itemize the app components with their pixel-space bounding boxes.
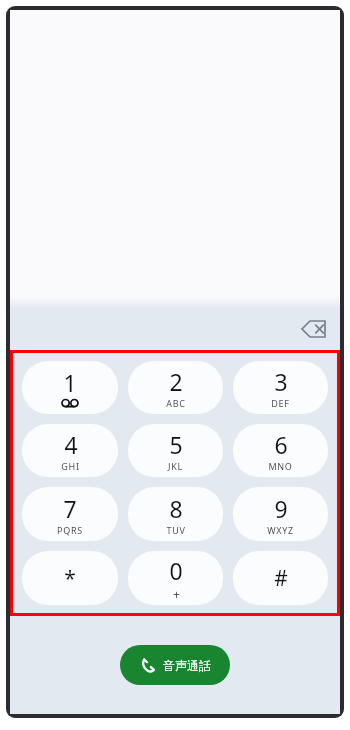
button[interactable]: 3 xyxy=(233,361,328,414)
button[interactable]: * xyxy=(22,551,118,605)
button[interactable]: 2 xyxy=(128,361,223,414)
staticText: 1 xyxy=(63,367,77,398)
staticText: JKL xyxy=(168,460,183,472)
staticText: 0 xyxy=(169,555,183,586)
button[interactable]: 6 xyxy=(233,424,328,477)
staticText: MNO xyxy=(268,460,293,472)
button[interactable]: 8 xyxy=(128,487,223,541)
staticText: * xyxy=(64,564,76,593)
staticText: 9 xyxy=(274,493,288,524)
button[interactable]: 0 xyxy=(128,551,223,605)
staticText: 5 xyxy=(169,429,183,460)
staticText: 7 xyxy=(63,493,77,524)
staticText: 2 xyxy=(169,366,183,397)
staticText: 6 xyxy=(274,429,288,460)
button[interactable]: 1 xyxy=(22,361,118,414)
staticText: PQRS xyxy=(57,524,83,536)
staticText: DEF xyxy=(271,397,290,409)
staticText: ABC xyxy=(166,397,186,409)
staticText: 8 xyxy=(169,493,183,524)
staticText: TUV xyxy=(166,524,186,536)
staticText: 4 xyxy=(64,429,78,460)
button[interactable]: 7 xyxy=(22,487,118,541)
staticText: # xyxy=(274,564,288,593)
button[interactable]: 9 xyxy=(233,487,328,541)
staticText: 音声通話 xyxy=(163,658,211,673)
staticText: 3 xyxy=(274,366,288,397)
button[interactable]: Backspace xyxy=(293,309,333,349)
staticText: WXYZ xyxy=(267,524,294,536)
staticText: + xyxy=(173,586,180,602)
button[interactable]: 5 xyxy=(128,424,223,477)
button[interactable]: # xyxy=(233,551,328,605)
button[interactable]: 4 xyxy=(22,424,118,477)
button[interactable]: 音声通話 xyxy=(120,645,230,685)
staticText: GHI xyxy=(61,460,80,472)
